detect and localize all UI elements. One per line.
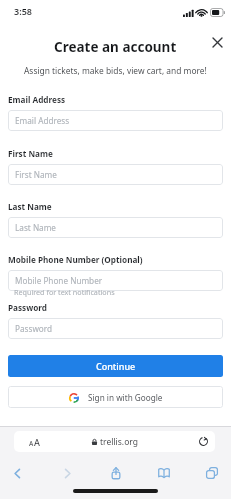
button[interactable]: Back [5, 461, 29, 485]
button[interactable]: Share [104, 461, 128, 485]
button[interactable]: trellis.org [14, 431, 215, 452]
staticText: Password [15, 323, 53, 334]
staticText: Sign in with Google [88, 392, 163, 403]
button[interactable]: Page settings [21, 431, 47, 452]
button[interactable]: Last Name [8, 217, 223, 238]
staticText: Mobile Phone Number [15, 275, 103, 286]
button[interactable]: First Name [8, 164, 223, 185]
button[interactable]: Forward [55, 461, 79, 485]
button[interactable]: Bookmarks [152, 461, 176, 485]
button[interactable]: Tabs [200, 461, 224, 485]
button[interactable]: Email Address [8, 110, 223, 131]
staticText: First Name [8, 148, 53, 159]
staticText: Create an account [54, 38, 177, 56]
button[interactable]: Reload [193, 431, 213, 452]
button[interactable]: Mobile Phone Number [8, 270, 223, 291]
staticText: First Name [15, 169, 57, 180]
staticText: Assign tickets, make bids, view cart, an… [24, 65, 207, 76]
staticText: A [34, 436, 40, 448]
button[interactable]: Continue [8, 355, 223, 377]
button[interactable]: Close [205, 30, 229, 54]
staticText: A [29, 439, 34, 448]
staticText: Last Name [15, 222, 56, 233]
staticText: trellis.org [100, 436, 138, 448]
staticText: Required for text notifications [14, 287, 115, 297]
button[interactable]: Password [8, 318, 223, 339]
staticText: 3:58 [14, 5, 32, 17]
staticText: Mobile Phone Number (Optional) [8, 254, 143, 265]
button[interactable]: Sign in with Google [8, 386, 223, 408]
staticText: Email Address [8, 94, 66, 105]
staticText: Last Name [8, 201, 52, 212]
staticText: Continue [96, 360, 136, 372]
staticText: Password [8, 302, 48, 313]
staticText: Email Address [15, 115, 70, 126]
